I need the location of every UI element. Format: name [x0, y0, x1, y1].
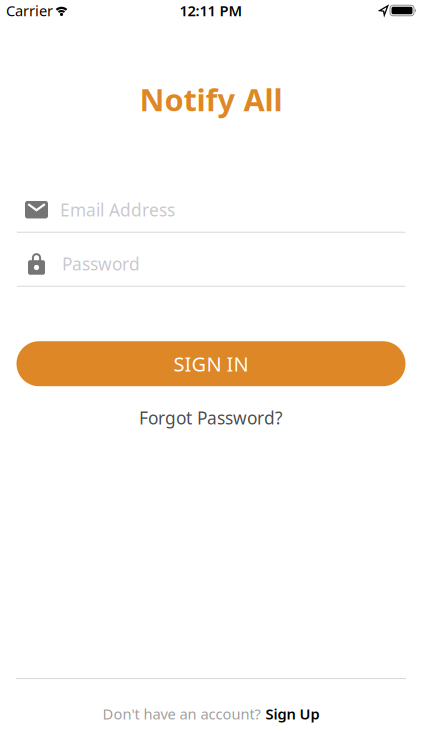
- staticText: Sign Up: [265, 704, 319, 723]
- staticText: Carrier: [6, 1, 53, 20]
- staticText: Email Address: [60, 198, 175, 221]
- button[interactable]: Forgot Password?: [139, 406, 283, 429]
- button[interactable]: Email Address: [0, 188, 422, 232]
- button[interactable]: SIGN IN: [0, 341, 422, 386]
- staticText: Forgot Password?: [139, 406, 283, 429]
- staticText: Notify All: [139, 79, 282, 120]
- staticText: SIGN IN: [173, 350, 248, 377]
- staticText: Don't have an account?: [102, 704, 260, 723]
- staticText: 12:11 PM: [179, 1, 242, 20]
- button[interactable]: Password: [0, 242, 422, 286]
- staticText: Password: [62, 252, 140, 275]
- button[interactable]: Sign Up: [265, 704, 319, 723]
